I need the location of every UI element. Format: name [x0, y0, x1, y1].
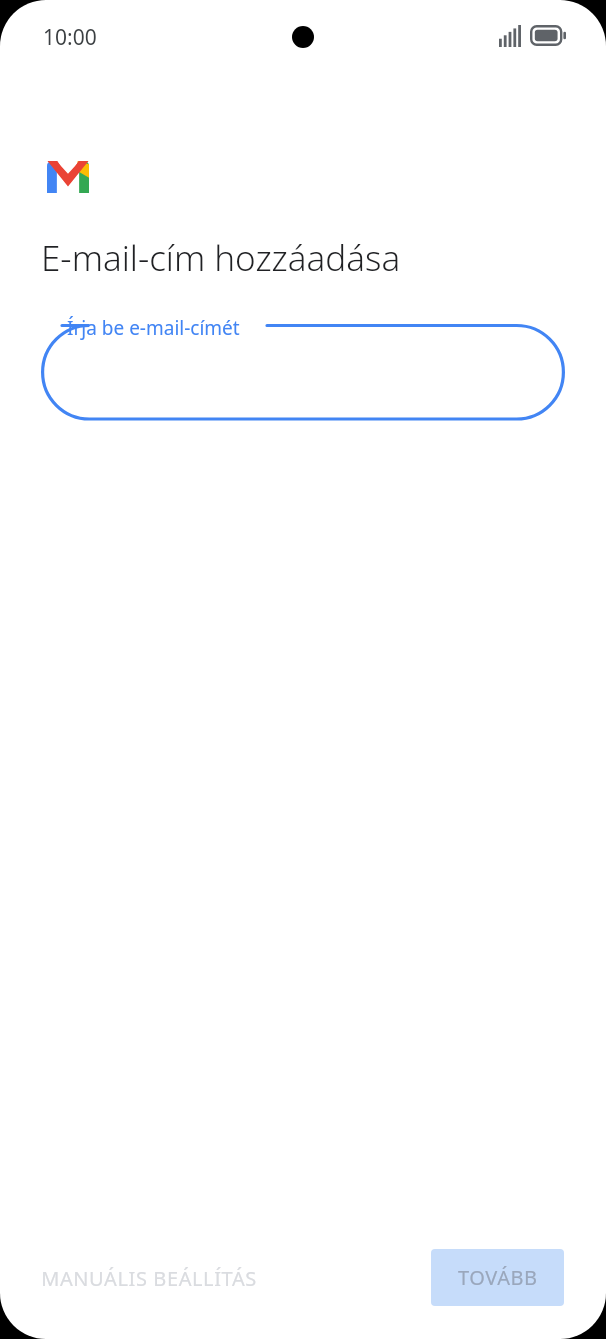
- staticText: MANUÁLIS BEÁLLÍTÁS: [41, 1265, 257, 1292]
- staticText: TOVÁBB: [458, 1264, 538, 1291]
- staticText: Írja be e-mail-címét: [67, 315, 240, 341]
- staticText: E-mail-cím hozzáadása: [41, 234, 401, 282]
- button[interactable]: MANUÁLIS BEÁLLÍTÁS: [26, 1252, 272, 1304]
- button[interactable]: TOVÁBB: [431, 1249, 564, 1306]
- button[interactable]: Írja be e-mail-címét: [41, 314, 565, 420]
- staticText: 10:00: [43, 23, 97, 52]
